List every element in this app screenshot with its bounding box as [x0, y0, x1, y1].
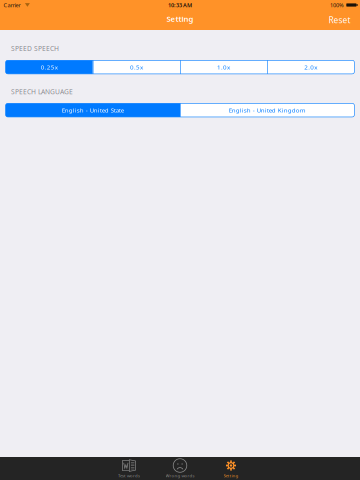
staticText: 2.0x [304, 63, 317, 71]
staticText: 100% [330, 1, 344, 9]
staticText: Setting [223, 473, 238, 478]
button[interactable]: 1.0x [180, 60, 267, 74]
staticText: 0.25x [41, 63, 58, 71]
staticText: Reset [328, 14, 350, 26]
button[interactable]: 2.0x [267, 60, 354, 74]
button[interactable]: 0.25x [6, 60, 93, 74]
button[interactable]: English - United State [6, 103, 180, 117]
staticText: English - United State [62, 106, 124, 114]
button[interactable]: Setting [205, 457, 256, 480]
button[interactable]: Test words [103, 457, 154, 480]
staticText: Test words [118, 473, 140, 478]
staticText: English - United Kingdom [229, 106, 306, 114]
staticText: 1.0x [217, 63, 230, 71]
staticText: SPEECH LANGUAGE [11, 87, 73, 96]
staticText: 0.5x [130, 63, 143, 71]
staticText: Setting [166, 13, 193, 24]
staticText: Carrier [3, 1, 20, 9]
staticText: 10:33 AM [168, 1, 192, 9]
button[interactable]: English - United Kingdom [180, 103, 354, 117]
staticText: Wrong words [165, 473, 194, 478]
button[interactable]: 0.5x [93, 60, 180, 74]
button[interactable]: Wrong words [154, 457, 205, 480]
button[interactable]: Reset [328, 10, 360, 30]
staticText: SPEED SPEECH [11, 44, 59, 53]
